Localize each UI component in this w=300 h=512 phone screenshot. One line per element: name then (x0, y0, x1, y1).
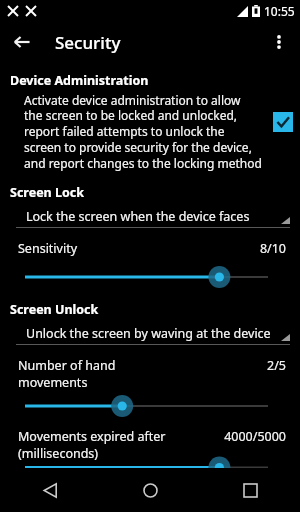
button[interactable]: Back (0, 468, 100, 512)
staticText: 4000/5000 (224, 428, 286, 445)
button[interactable]: Back (6, 26, 38, 58)
staticText: Lock the screen when the device faces do… (26, 208, 274, 225)
staticText: Screen Unlock (10, 301, 99, 318)
staticText: Unlock the screen by waving at the devic… (26, 325, 271, 342)
button[interactable]: Slider (0, 467, 300, 468)
staticText: Number of hand movements (18, 357, 267, 390)
button[interactable]: Slider (0, 396, 300, 416)
button[interactable]: Slider (0, 267, 300, 287)
button[interactable]: Device Administration (0, 72, 300, 172)
staticText: 10:55 (264, 3, 295, 19)
staticText: 8/10 (259, 240, 286, 257)
staticText: Sensitivity (18, 240, 259, 257)
staticText: Activate device administration to allow … (24, 92, 262, 172)
button[interactable]: Device administration enabled (266, 105, 300, 139)
staticText: 2/5 (267, 357, 286, 374)
staticText: Movements expired after (milliseconds) (18, 428, 224, 461)
button[interactable]: Home (100, 468, 200, 512)
staticText: Device Administration (10, 72, 149, 89)
button[interactable]: Recent apps (200, 468, 300, 512)
button[interactable]: More options (262, 25, 296, 59)
button[interactable]: Lock the screen when the device faces do… (16, 208, 290, 228)
staticText: Screen Lock (10, 184, 84, 201)
staticText: Security (55, 31, 121, 54)
button[interactable]: Unlock the screen by waving at the devic… (16, 325, 290, 345)
